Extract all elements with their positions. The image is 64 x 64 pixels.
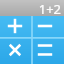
button[interactable]: 1+2	[0, 0, 64, 16]
button[interactable]: Multiply	[0, 36, 30, 64]
staticText: 1+2	[38, 0, 61, 16]
button[interactable]: Minus	[30, 16, 60, 36]
button[interactable]: Equals	[30, 36, 60, 64]
button[interactable]: Plus	[0, 16, 30, 36]
